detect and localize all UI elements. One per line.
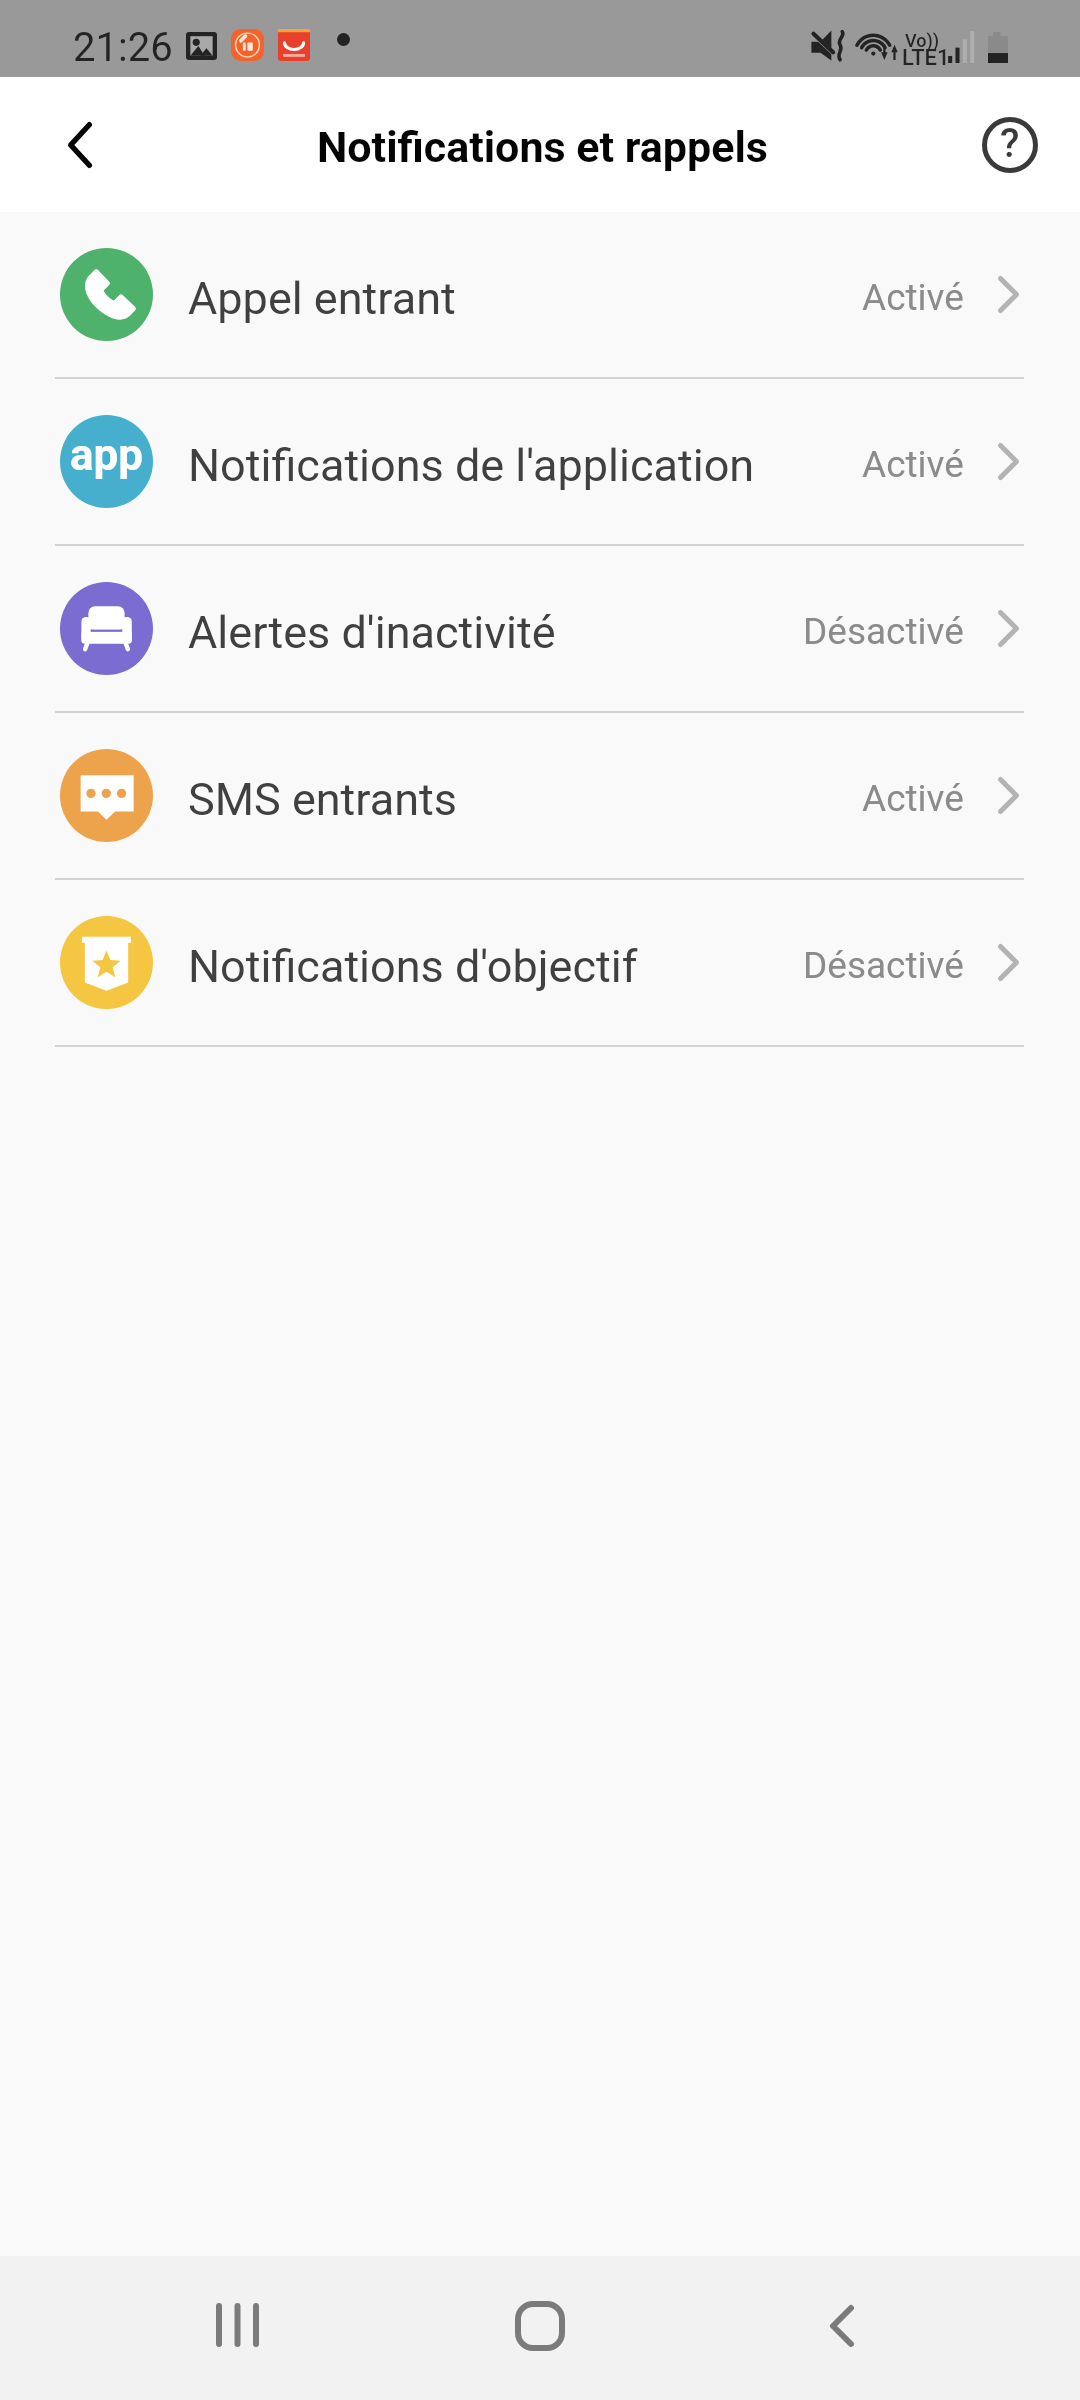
staticText: Notifications d'objectif: [188, 940, 638, 993]
button[interactable]: Back: [787, 2254, 897, 2398]
button[interactable]: Alertes d'inactivité: [0, 546, 1080, 713]
button[interactable]: Help: [954, 77, 1066, 212]
button[interactable]: Back: [24, 77, 136, 212]
button[interactable]: app: [0, 379, 1080, 546]
staticText: Alertes d'inactivité: [188, 606, 556, 659]
button[interactable]: Notifications d'objectif: [0, 880, 1080, 1047]
button[interactable]: Home: [485, 2254, 595, 2398]
staticText: LTE1: [902, 45, 950, 71]
button[interactable]: SMS entrants: [0, 713, 1080, 880]
staticText: Vo)): [905, 30, 940, 51]
staticText: Notifications de l'application: [188, 439, 755, 492]
staticText: Notifications et rappels: [317, 122, 768, 172]
staticText: Appel entrant: [188, 272, 456, 325]
staticText: ?: [1000, 120, 1020, 167]
button[interactable]: Recent apps: [182, 2253, 292, 2397]
button[interactable]: Appel entrant: [0, 212, 1080, 379]
staticText: Désactivé: [803, 944, 964, 987]
staticText: SMS entrants: [188, 773, 457, 826]
staticText: 21:26: [73, 24, 173, 71]
staticText: Activé: [862, 443, 964, 486]
staticText: Désactivé: [803, 610, 964, 653]
staticText: app: [70, 429, 144, 481]
staticText: Activé: [862, 276, 964, 319]
staticText: Activé: [862, 777, 964, 820]
